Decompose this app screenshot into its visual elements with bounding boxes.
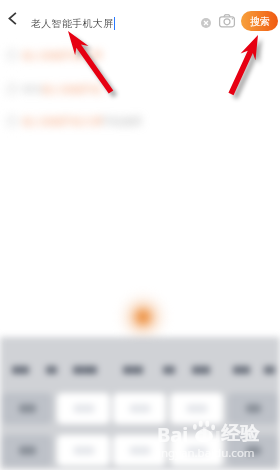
- button[interactable]: [2, 435, 52, 466]
- button[interactable]: [113, 393, 166, 424]
- button[interactable]: 老人智能手机大屏: [0, 113, 280, 129]
- staticText: 手机推荐: [102, 115, 142, 128]
- button[interactable]: 华为: [0, 81, 280, 97]
- button[interactable]: 搜索: [241, 11, 278, 31]
- button[interactable]: [2, 393, 52, 424]
- staticText: 老人智能手机: [42, 83, 102, 96]
- button[interactable]: Camera search: [217, 11, 237, 31]
- staticText: 华为: [22, 83, 42, 96]
- staticText: 经验: [221, 422, 259, 446]
- staticText: du: [195, 421, 221, 448]
- button[interactable]: [228, 435, 278, 466]
- button[interactable]: [170, 393, 223, 424]
- button[interactable]: [228, 393, 278, 424]
- button[interactable]: Clear text: [195, 12, 216, 33]
- staticText: Bai: [157, 421, 189, 448]
- button[interactable]: [57, 393, 110, 424]
- button[interactable]: 老人智能手机大屏: [0, 47, 280, 63]
- button[interactable]: [113, 435, 166, 466]
- button[interactable]: Back: [0, 6, 24, 30]
- staticText: 老人智能手机大屏: [22, 49, 102, 62]
- staticText: 老人智能手机大屏: [31, 17, 114, 30]
- staticText: 老人智能手机大屏: [22, 115, 102, 128]
- staticText: jingyan.baidu.com: [155, 445, 255, 461]
- button[interactable]: [170, 435, 223, 466]
- staticText: 搜索: [250, 15, 270, 28]
- button[interactable]: [57, 435, 110, 466]
